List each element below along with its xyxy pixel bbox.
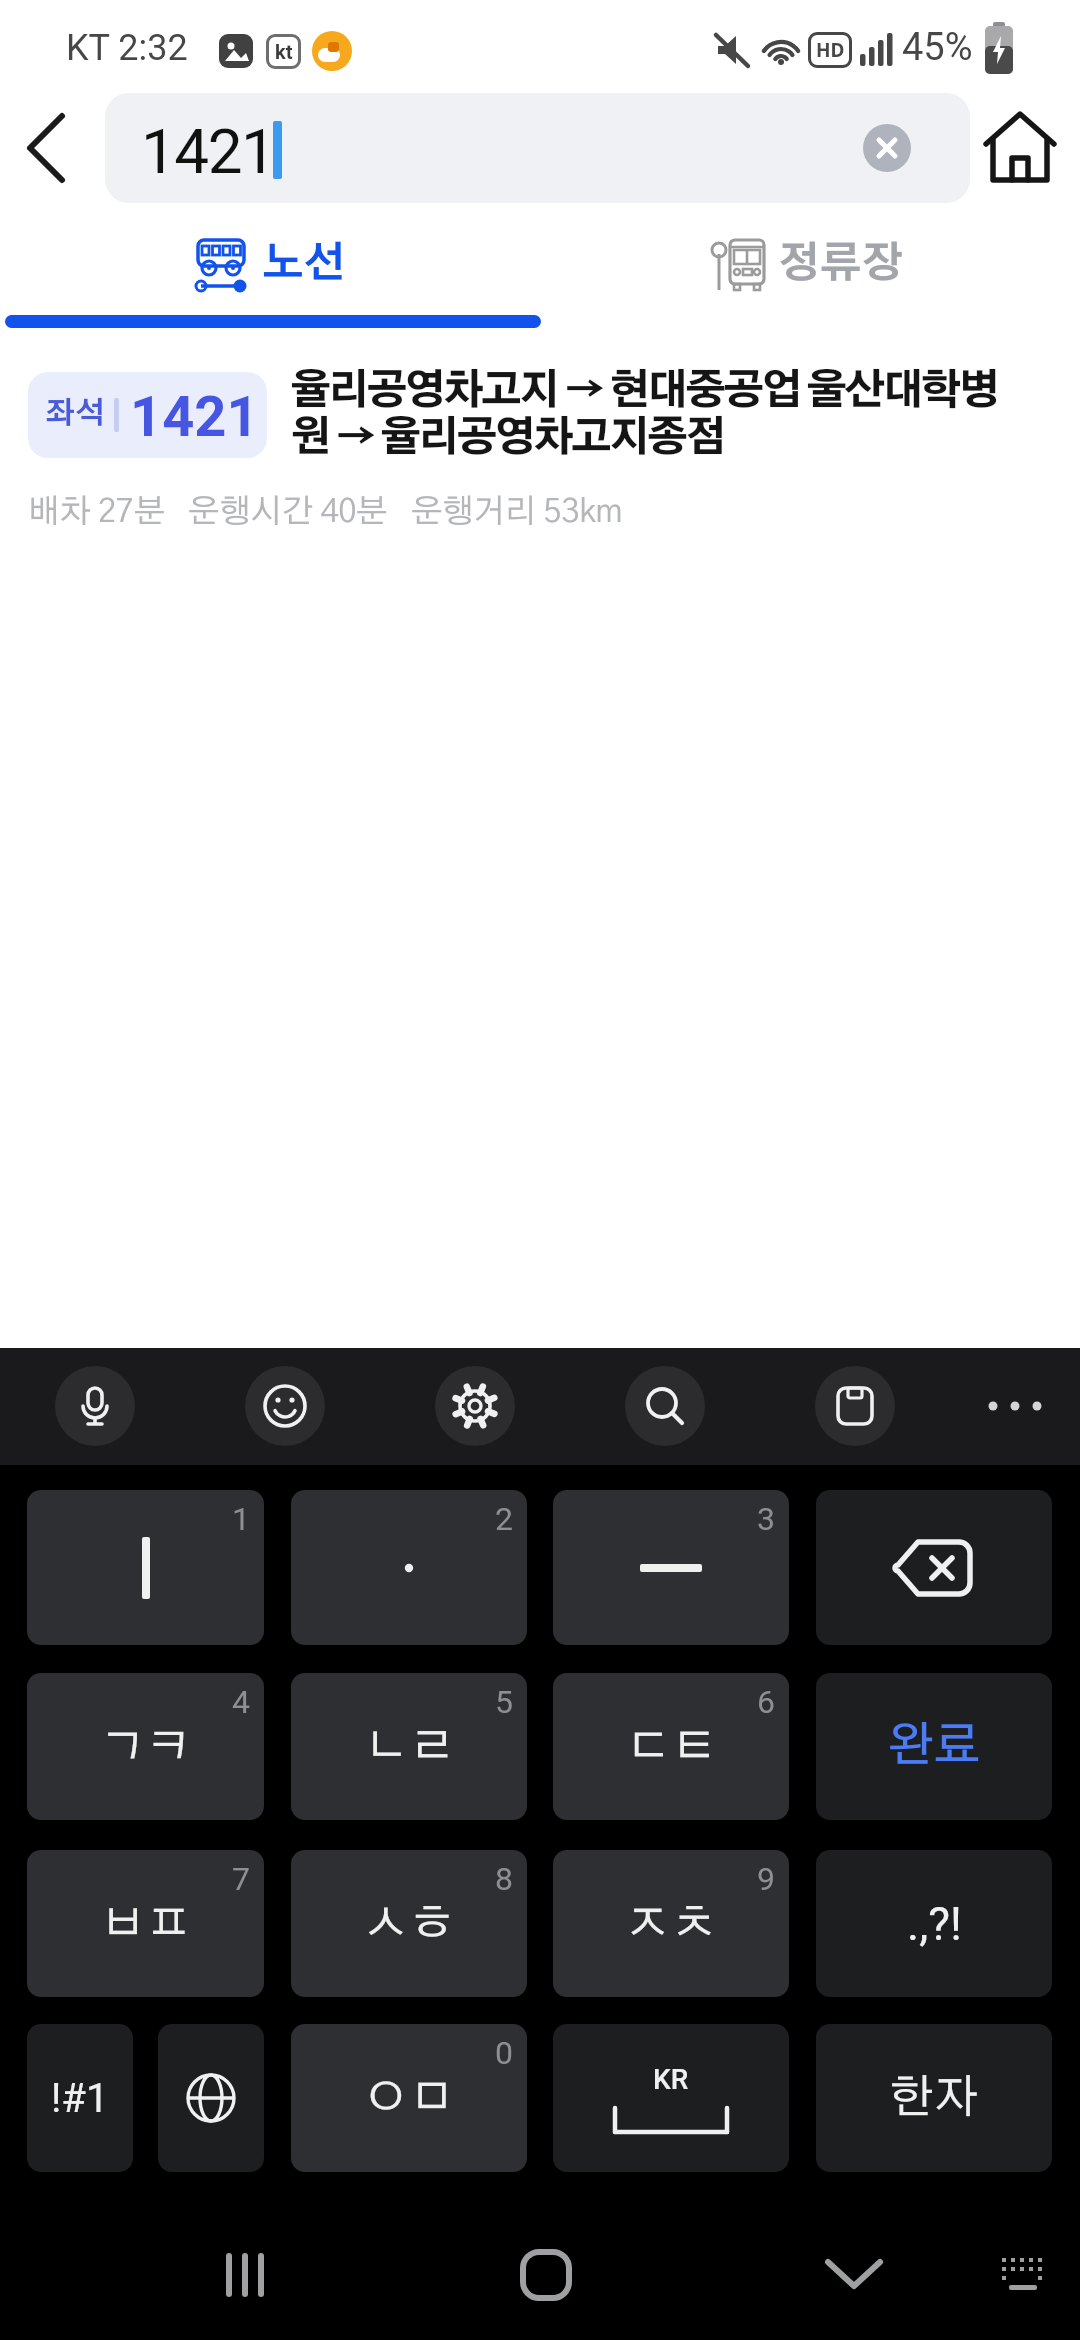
button[interactable]: 5 [291,1673,527,1820]
button[interactable] [863,124,911,172]
staticText: ㅅㅎ [363,1901,455,1947]
staticText: .,?! [907,1897,962,1951]
staticText: 노선 [262,243,346,285]
staticText: ㅇㅁ [363,2075,455,2121]
staticText: 1 [232,1500,250,1538]
staticText: 1421 [130,384,259,450]
staticText: 1421 [141,115,275,188]
button[interactable] [774,2230,934,2320]
staticText: 정류장 [778,243,904,285]
staticText: ㅂㅍ [100,1901,192,1947]
staticText: 배차 27분 [28,496,165,529]
staticText: KT 2:32 [66,27,188,69]
button[interactable]: KR [553,2024,789,2172]
button[interactable]: 1 [27,1490,264,1645]
button[interactable]: 정류장 [540,220,1080,310]
button[interactable]: 0 [291,2024,527,2172]
staticText: 6 [757,1683,775,1721]
staticText: 5 [495,1683,513,1721]
staticText: 한자 [890,2075,979,2121]
button[interactable]: 좌석 [0,350,1080,550]
staticText: 0 [495,2034,513,2072]
button[interactable]: 완료 [816,1673,1052,1820]
staticText: ㄱㅋ [100,1724,192,1770]
staticText: ㄴㄹ [363,1724,455,1770]
button[interactable]: .,?! [816,1850,1052,1997]
button[interactable]: 7 [27,1850,264,1997]
staticText: HD [816,37,845,63]
staticText: !#1 [51,2075,109,2122]
staticText: 완료 [887,1723,981,1771]
button[interactable] [55,1366,135,1446]
button[interactable] [158,2024,264,2172]
button[interactable] [625,1366,705,1446]
staticText: 율리공영차고지 → 현대중공업 울산대학병 원 → 율리공영차고지종점 [290,371,997,459]
staticText: 9 [757,1860,775,1898]
staticText: 8 [495,1860,513,1898]
button[interactable] [165,2230,325,2320]
button[interactable]: 3 [553,1490,789,1645]
button[interactable] [245,1366,325,1446]
button[interactable]: 노선 [0,220,540,310]
staticText: kt [275,40,293,63]
button[interactable]: 9 [553,1850,789,1997]
button[interactable] [815,1366,895,1446]
button[interactable]: 한자 [816,2024,1052,2172]
button[interactable]: 4 [27,1673,264,1820]
staticText: ㄷㅌ [625,1724,717,1770]
staticText: 3 [757,1500,775,1538]
staticText: 4 [232,1683,250,1721]
button[interactable]: !#1 [27,2024,133,2172]
button[interactable] [435,1366,515,1446]
button[interactable] [985,2240,1061,2310]
button[interactable] [984,110,1056,186]
button[interactable]: 8 [291,1850,527,1997]
button[interactable] [816,1490,1052,1645]
button[interactable] [980,1398,1050,1414]
staticText: KR [653,2063,689,2096]
staticText: 7 [232,1860,250,1898]
staticText: 운행거리 53km [411,496,623,529]
button[interactable]: 2 [291,1490,527,1645]
staticText: 좌석 [45,399,105,429]
button[interactable] [26,114,70,182]
staticText: 45% [902,25,973,70]
button[interactable]: 1421 [105,93,970,203]
staticText: 운행시간 40분 [188,496,388,529]
staticText: ㅈㅊ [625,1901,717,1947]
staticText: 2 [495,1500,513,1538]
button[interactable]: 6 [553,1673,789,1820]
button[interactable] [466,2230,626,2320]
